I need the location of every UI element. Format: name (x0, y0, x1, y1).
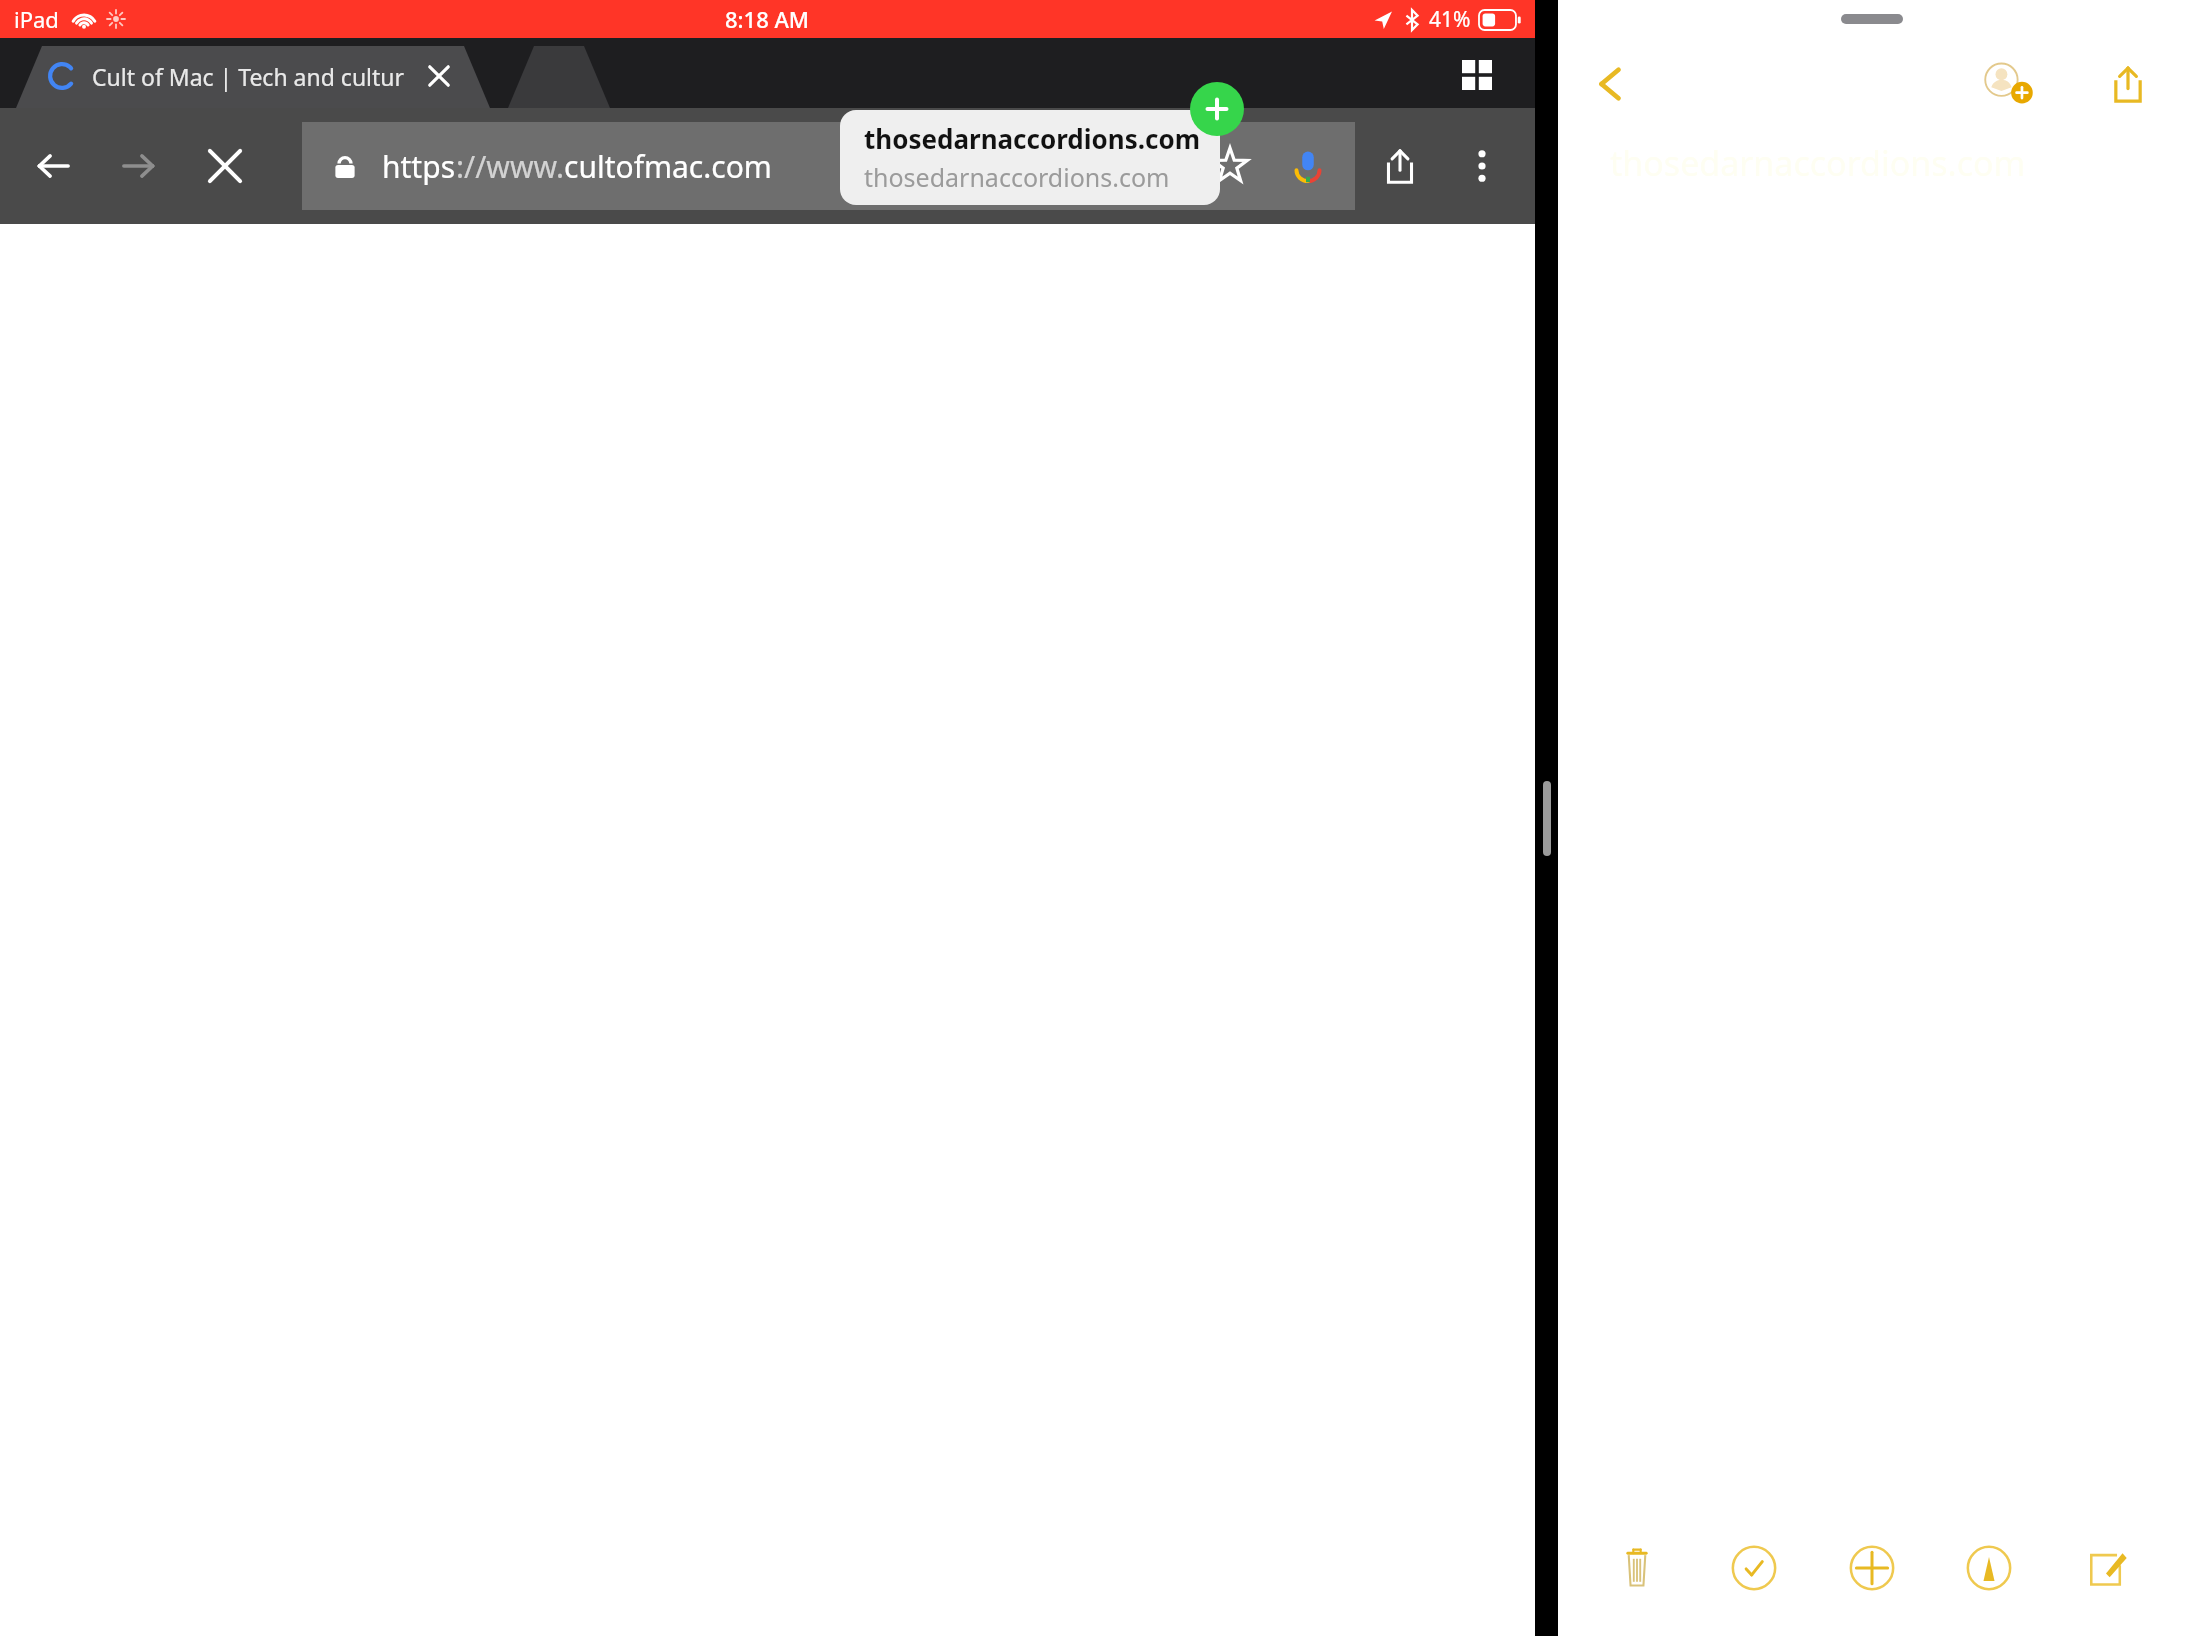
button[interactable]: Markup (1951, 1530, 2027, 1606)
button[interactable]: Share (2093, 49, 2163, 119)
button[interactable]: Forward (108, 135, 170, 197)
button[interactable]: Checklist (1716, 1530, 1792, 1606)
button[interactable]: Close tab (419, 56, 459, 96)
staticText: thosedarnaccordions.com (1610, 140, 2026, 186)
button[interactable]: Add people (1971, 46, 2047, 122)
button[interactable]: Back (22, 135, 84, 197)
button[interactable]: Add (1190, 82, 1244, 136)
button[interactable]: Voice search (1277, 135, 1339, 197)
button[interactable]: Add attachment (1834, 1530, 1910, 1606)
staticText: ://www. (456, 146, 564, 187)
button[interactable]: https (302, 122, 1355, 210)
button[interactable]: Back (1576, 49, 1646, 119)
staticText: 8:18 AM (725, 4, 810, 34)
button[interactable]: Stop loading (194, 135, 256, 197)
button[interactable]: Tab switcher (1449, 47, 1505, 103)
button[interactable]: More options (1451, 135, 1513, 197)
staticText: 41% (1429, 5, 1471, 34)
button[interactable]: thosedarnaccordions.com (840, 110, 1220, 205)
staticText: iPad (14, 4, 59, 34)
staticText: thosedarnaccordions.com (864, 121, 1201, 156)
staticText: cultofmac.com (564, 146, 772, 187)
staticText: Cult of Mac | Tech and cultur (92, 61, 405, 92)
button[interactable]: Bookmark (1199, 135, 1261, 197)
button[interactable]: Delete (1599, 1530, 1675, 1606)
button[interactable]: Share (1369, 135, 1431, 197)
button[interactable]: New note (2068, 1530, 2144, 1606)
staticText: https (382, 146, 456, 187)
staticText: thosedarnaccordions.com (864, 160, 1170, 194)
